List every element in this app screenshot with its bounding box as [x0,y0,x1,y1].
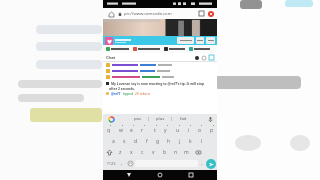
staticText: m [184,149,189,156]
button[interactable]: Send [206,159,216,169]
staticText: l [201,138,203,145]
button[interactable]: Shift [103,147,115,157]
button[interactable]: Spin it [106,45,129,53]
button[interactable]: Users [193,54,200,61]
staticText: e [130,127,133,134]
button[interactable]: Favorite [105,37,113,45]
staticText: after 2 seconds. [109,86,135,90]
button[interactable]: p [206,125,217,135]
staticText: plus [156,116,165,122]
button[interactable] [103,62,217,68]
button[interactable]: Tabs [197,9,206,18]
button[interactable]: q [103,125,114,135]
staticText: g [156,138,160,145]
staticText: w [119,127,123,134]
button[interactable]: t [149,125,160,135]
staticText: q [107,127,111,134]
button[interactable]: z [115,147,126,157]
staticText: @ref7 [111,91,121,95]
button[interactable]: Google [107,115,115,123]
button[interactable]: e [126,125,137,135]
staticText: v [152,149,155,156]
button[interactable]: Back [124,170,134,180]
button[interactable]: x [126,147,137,157]
staticText: t [154,127,156,134]
button[interactable]: Comma [118,158,126,169]
staticText: fait [180,116,187,122]
button[interactable]: plus [149,114,171,124]
button[interactable]: Emoji [126,158,135,169]
button[interactable]: Recent apps [186,170,196,180]
button[interactable]: l [196,136,207,146]
button[interactable]: h [163,136,174,146]
staticText: 20 tokens [135,91,151,95]
button[interactable]: More [207,53,215,61]
button[interactable]: Stop loading [206,9,215,18]
staticText: d [134,138,138,145]
button[interactable]: Contact her [133,45,160,53]
staticText: x [130,149,133,156]
button[interactable]: u [172,125,183,135]
button[interactable]: d [130,136,141,146]
button[interactable]: b [159,147,170,157]
staticText: j [179,138,181,145]
button[interactable]: g [152,136,163,146]
button[interactable]: Period [198,158,206,169]
staticText: . [201,160,203,167]
staticText: My Lovense toy is now reacting to @ref7'… [111,81,205,85]
staticText: s [123,138,126,145]
button[interactable]: Backspace [192,147,204,157]
staticText: n [174,149,178,156]
button[interactable]: a [108,136,119,146]
staticText: r [141,127,144,134]
button[interactable]: f [141,136,152,146]
staticText: k [189,138,192,145]
button[interactable]: m [181,147,192,157]
button[interactable]: v [148,147,159,157]
button[interactable]: Home [155,170,165,180]
staticText: y [164,127,167,134]
button[interactable]: pas [126,114,148,124]
staticText: c [141,149,144,156]
button[interactable]: fait [172,114,194,124]
staticText: u [176,127,180,134]
button[interactable]: Voice input [206,115,215,124]
button[interactable]: Settings [200,54,207,61]
staticText: , [121,160,123,167]
staticText: Chat [106,55,116,60]
staticText: o [198,127,202,134]
button[interactable]: r [137,125,148,135]
staticText: f [146,138,148,145]
staticText: p [210,127,214,134]
button[interactable]: n [170,147,181,157]
button[interactable] [103,68,217,74]
button[interactable]: c [137,147,148,157]
button[interactable]: i [183,125,194,135]
button[interactable]: y [160,125,171,135]
button[interactable]: tokens [177,37,194,44]
button[interactable]: hd [196,37,204,44]
staticText: z [119,149,122,156]
staticText: b [163,149,167,156]
button[interactable]: o [194,125,205,135]
staticText: i [188,127,190,134]
staticText: tipped [123,91,133,95]
button[interactable]: Home [107,10,115,18]
button[interactable]: Roll it [189,45,210,53]
staticText: a [112,138,115,145]
button[interactable]: w [115,125,126,135]
button[interactable]: s [119,136,130,146]
staticText: pn://www.camsoda.com [124,11,172,17]
button[interactable]: full [206,37,215,44]
staticText: h [167,138,171,145]
button[interactable]: ?123 [104,158,118,169]
button[interactable] [103,74,217,80]
staticText: pas [134,116,141,122]
staticText: ?123 [107,161,116,166]
button[interactable]: Put it [164,45,185,53]
button[interactable]: k [185,136,196,146]
button[interactable]: j [174,136,185,146]
